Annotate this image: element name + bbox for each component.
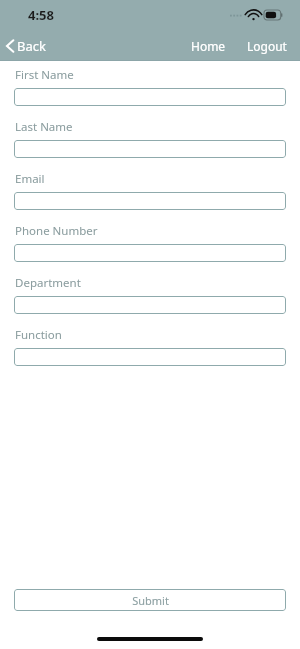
staticText: Logout [247,38,287,54]
staticText: Submit [132,593,169,608]
staticText: Phone Number [15,223,98,239]
staticText: Department [15,275,81,291]
button[interactable]: First Name [14,88,286,106]
staticText: 4:58 [28,6,54,24]
button[interactable]: Submit [14,589,286,611]
staticText: Last Name [15,119,73,135]
staticText: Home [191,38,226,54]
button[interactable]: Phone Number [14,244,286,262]
button[interactable]: Email [14,192,286,210]
button[interactable]: Back [0,33,54,59]
staticText: Email [15,171,45,187]
button[interactable]: Department [14,296,286,314]
button[interactable]: Last Name [14,140,286,158]
button[interactable]: Home [186,33,231,59]
staticText: Back [17,37,46,55]
button[interactable]: Logout [242,33,292,59]
staticText: Function [15,327,62,343]
staticText: First Name [15,67,74,83]
button[interactable]: Function [14,348,286,366]
